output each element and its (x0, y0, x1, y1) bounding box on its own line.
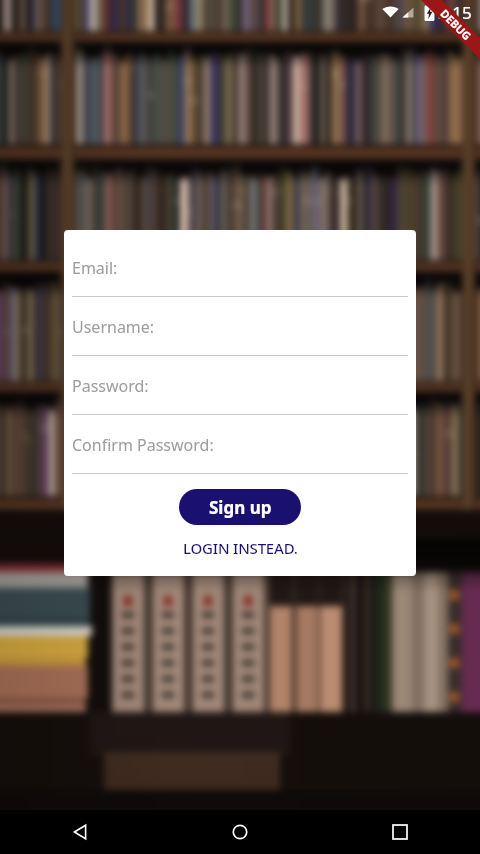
button[interactable]: Home (160, 810, 320, 854)
staticText: LOGIN INSTEAD. (183, 538, 298, 558)
staticText: DEBUG (437, 6, 475, 43)
button[interactable]: Sign up (179, 489, 301, 525)
staticText: 3:15 (438, 1, 472, 24)
staticText: Confirm Password: (72, 434, 214, 456)
button[interactable]: Back (0, 810, 160, 854)
staticText: Email: (72, 257, 118, 279)
staticText: Sign up (209, 496, 272, 519)
button[interactable]: Recents (320, 810, 480, 854)
button[interactable]: LOGIN INSTEAD. (175, 534, 306, 562)
staticText: Password: (72, 375, 149, 397)
staticText: Username: (72, 316, 155, 338)
